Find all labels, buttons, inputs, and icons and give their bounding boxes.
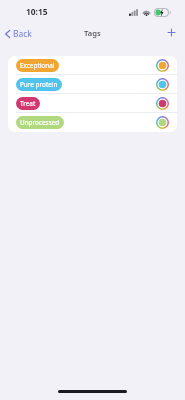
button[interactable]: Exceptional [8,56,177,75]
staticText: Unprocessed [20,118,60,127]
staticText: Pure protein [20,80,58,89]
button[interactable]: Pure protein [8,75,177,94]
staticText: Tags [84,28,101,38]
staticText: 10:15 [26,6,48,17]
button[interactable]: Treat [8,94,177,113]
button[interactable]: Back [0,25,40,42]
staticText: Exceptional [20,61,55,70]
staticText: Treat [20,99,36,108]
button[interactable]: Add tag [159,23,185,43]
staticText: Back [13,28,32,39]
button[interactable]: Unprocessed [8,113,177,132]
